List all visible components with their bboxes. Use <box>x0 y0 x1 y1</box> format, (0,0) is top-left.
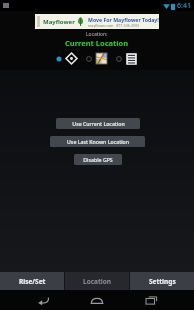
staticText: Use Last Known Location <box>67 138 129 145</box>
button[interactable]: Selected option <box>55 55 62 62</box>
staticText: Move For Mayflower Today! <box>88 16 159 23</box>
staticText: Settings <box>149 277 176 286</box>
button[interactable]: Rise/Set <box>0 272 64 290</box>
button[interactable]: Map Location <box>94 51 109 66</box>
button[interactable]: Settings <box>130 272 194 290</box>
staticText: Current Location <box>65 38 129 48</box>
button[interactable]: Disable GPS <box>74 154 122 165</box>
button[interactable]: Location <box>65 272 129 290</box>
button[interactable]: Unselected option <box>85 55 92 62</box>
staticText: Mayflower <box>43 18 75 26</box>
staticText: 6:41 <box>177 1 191 11</box>
staticText: Rise/Set <box>19 277 46 286</box>
button[interactable]: Use Last Known Location <box>50 136 145 147</box>
button[interactable]: Back <box>27 290 59 310</box>
staticText: Disable GPS <box>83 156 113 163</box>
button[interactable]: Home <box>81 290 113 310</box>
button[interactable]: Current Location <box>64 51 79 66</box>
button[interactable]: Advertisement <box>35 14 159 29</box>
button[interactable]: Use Current Location <box>56 118 140 129</box>
staticText: Location <box>83 277 111 286</box>
staticText: Use Current Location <box>72 120 125 127</box>
button[interactable]: Recent apps <box>135 290 167 310</box>
staticText: Location: <box>86 31 108 38</box>
staticText: mayflower.com 877-336-2503 <box>88 23 140 28</box>
button[interactable]: Location List <box>124 51 139 66</box>
button[interactable]: Unselected option <box>115 55 122 62</box>
